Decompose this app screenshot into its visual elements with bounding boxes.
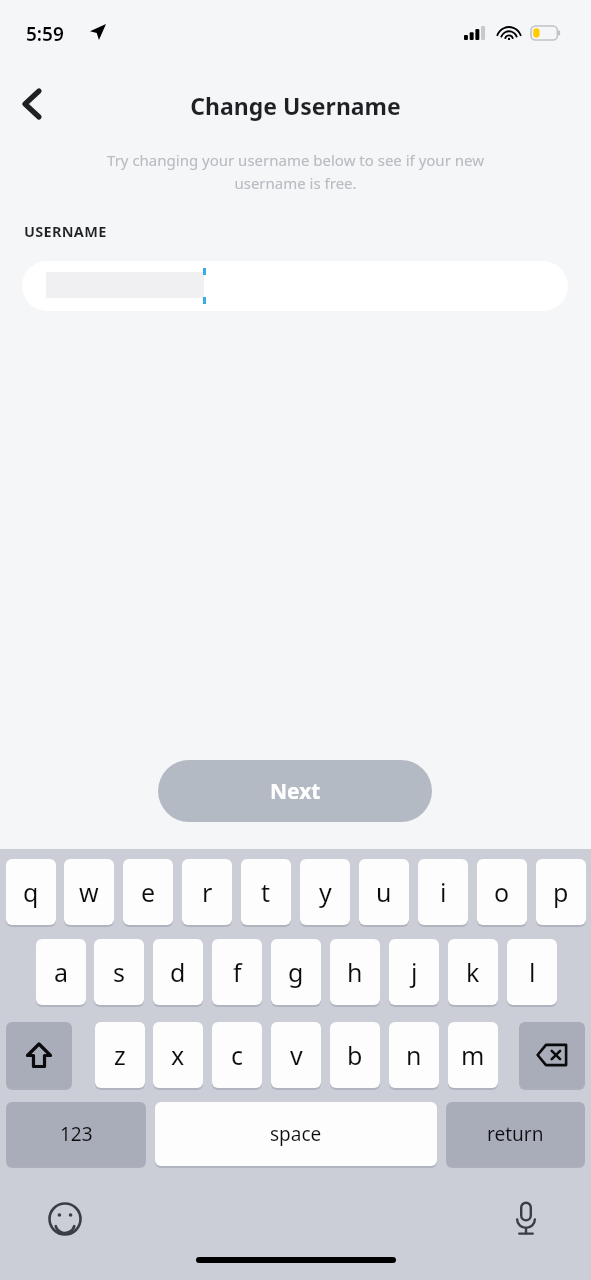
staticText: d [170, 955, 186, 989]
staticText: z [114, 1038, 126, 1072]
staticText: space [270, 1121, 322, 1147]
button[interactable]: Backspace [519, 1022, 585, 1088]
staticText: return [487, 1121, 544, 1147]
staticText: 123 [60, 1121, 93, 1147]
staticText: q [23, 875, 39, 909]
staticText: w [79, 875, 99, 909]
button[interactable] [22, 261, 568, 311]
button[interactable]: n [389, 1022, 439, 1088]
staticText: 5:59 [26, 21, 64, 47]
button[interactable]: u [359, 859, 409, 925]
staticText: p [553, 875, 569, 909]
staticText: x [171, 1038, 185, 1072]
button[interactable]: d [153, 939, 203, 1005]
button[interactable]: f [212, 939, 262, 1005]
staticText: g [288, 955, 304, 989]
button[interactable]: i [418, 859, 468, 925]
staticText: c [231, 1038, 244, 1072]
staticText: j [411, 955, 418, 989]
button[interactable]: space [155, 1102, 437, 1166]
staticText: a [54, 955, 69, 989]
staticText: s [113, 955, 125, 989]
staticText: u [376, 875, 392, 909]
button[interactable]: o [477, 859, 527, 925]
button[interactable]: v [271, 1022, 321, 1088]
button[interactable]: Shift [6, 1022, 72, 1088]
button[interactable]: p [536, 859, 586, 925]
button[interactable]: h [330, 939, 380, 1005]
button[interactable]: z [95, 1022, 145, 1088]
button[interactable]: x [153, 1022, 203, 1088]
button[interactable]: y [300, 859, 350, 925]
button[interactable]: w [64, 859, 114, 925]
button[interactable]: a [36, 939, 86, 1005]
staticText: i [440, 875, 447, 909]
staticText: Next [270, 777, 321, 806]
button[interactable]: Dictation [501, 1194, 551, 1244]
button[interactable]: t [241, 859, 291, 925]
staticText: b [347, 1038, 363, 1072]
button[interactable]: c [212, 1022, 262, 1088]
staticText: USERNAME [24, 221, 107, 241]
staticText: e [141, 875, 156, 909]
staticText: Try changing your username below to see … [78, 150, 513, 193]
staticText: l [529, 955, 536, 989]
button[interactable]: m [448, 1022, 498, 1088]
staticText: t [261, 875, 271, 909]
staticText: o [494, 875, 510, 909]
button[interactable]: g [271, 939, 321, 1005]
staticText: f [233, 955, 242, 989]
button[interactable]: return [446, 1102, 585, 1166]
button[interactable]: j [389, 939, 439, 1005]
button[interactable]: q [6, 859, 56, 925]
button[interactable]: Back [6, 78, 58, 130]
button[interactable]: Next [158, 760, 432, 822]
button[interactable]: e [123, 859, 173, 925]
button[interactable]: k [448, 939, 498, 1005]
staticText: h [347, 955, 363, 989]
button[interactable]: s [94, 939, 144, 1005]
button[interactable]: l [507, 939, 557, 1005]
staticText: y [319, 875, 332, 909]
button[interactable]: 123 [6, 1102, 146, 1166]
staticText: n [406, 1038, 422, 1072]
staticText: r [202, 875, 213, 909]
staticText: k [466, 955, 480, 989]
staticText: Change Username [0, 90, 591, 121]
button[interactable]: Emoji [40, 1194, 90, 1244]
staticText: v [290, 1038, 303, 1072]
staticText: m [461, 1038, 485, 1072]
button[interactable]: r [182, 859, 232, 925]
button[interactable]: b [330, 1022, 380, 1088]
